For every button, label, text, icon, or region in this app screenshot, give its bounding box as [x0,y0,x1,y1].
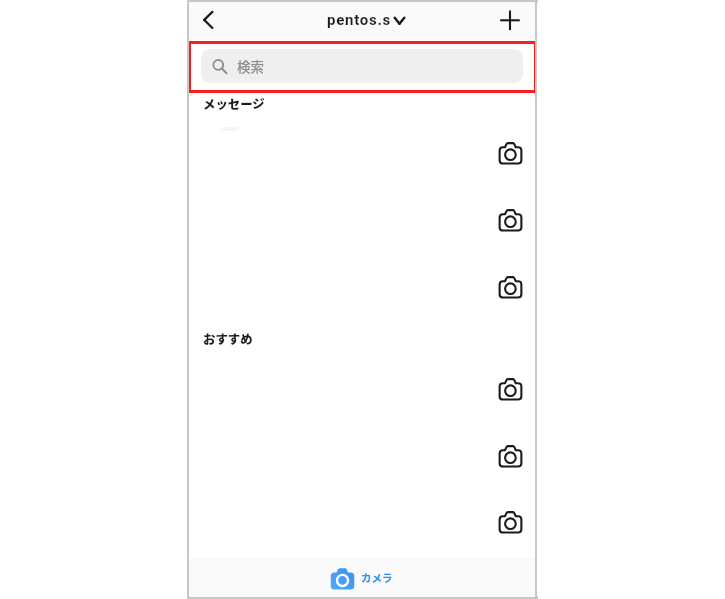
button[interactable]: 検索 [201,49,523,83]
button[interactable]: Camera [189,120,535,187]
other: Camera [498,141,523,166]
button[interactable]: Back [193,4,225,36]
button[interactable]: New message [494,4,526,36]
staticText: おすすめ [203,330,253,348]
staticText: pentos.s [327,11,392,28]
other: Camera [498,444,523,469]
button[interactable]: Camera [189,187,535,254]
button[interactable]: Camera [189,254,535,321]
other: Camera [498,275,523,300]
button[interactable]: カメラ [189,558,535,597]
staticText: カメラ [361,570,393,585]
other: Camera [498,208,523,233]
staticText: 検索 [237,56,264,76]
button[interactable]: pentos.s [327,11,406,28]
other: Camera [498,377,523,402]
button[interactable]: Camera [189,423,535,490]
button[interactable]: Camera [189,489,535,556]
staticText: メッセージ [203,95,265,113]
button[interactable]: Camera [189,356,535,423]
other: Camera [498,510,523,535]
